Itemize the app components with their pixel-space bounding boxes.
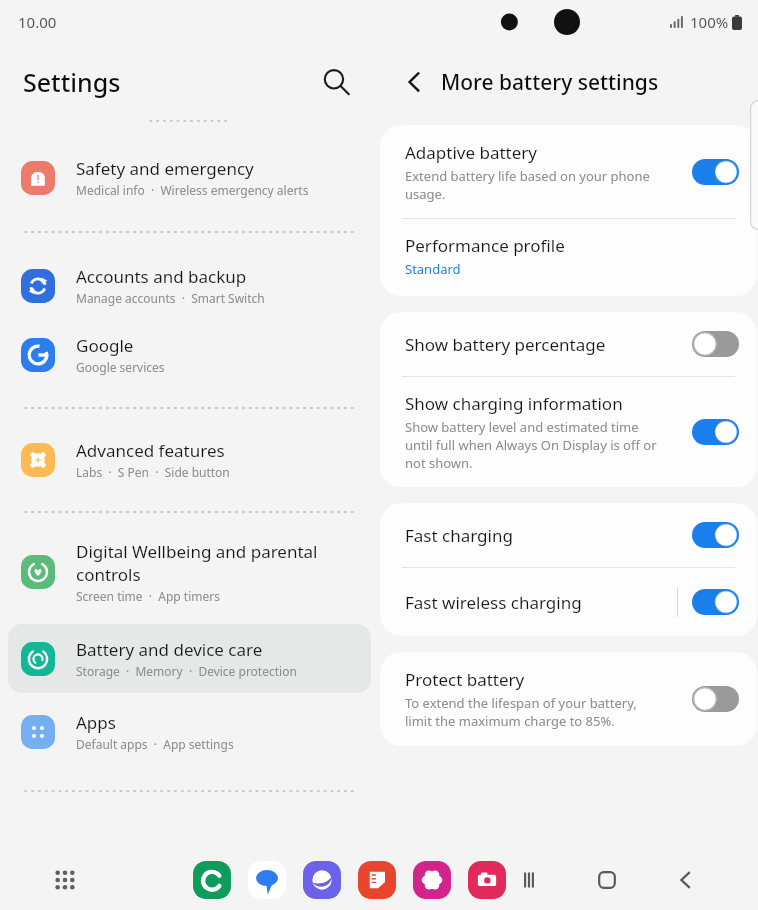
staticText: Digital Wellbeing and parental controls xyxy=(76,540,318,586)
staticText: Accounts and backup xyxy=(76,265,247,288)
button[interactable]: Protect battery xyxy=(380,652,757,746)
button[interactable]: Notes xyxy=(358,861,396,899)
staticText: 10.00 xyxy=(18,12,57,32)
staticText: Settings xyxy=(23,65,121,99)
staticText: Show battery percentage xyxy=(405,333,606,356)
staticText: Battery and device care xyxy=(76,638,263,661)
staticText: Screen time · App timers xyxy=(76,588,220,604)
button[interactable]: Toggle on xyxy=(692,522,739,548)
staticText: Performance profile xyxy=(405,234,565,257)
staticText: Standard xyxy=(405,260,461,278)
button[interactable]: Apps xyxy=(8,697,371,766)
button[interactable]: Gallery xyxy=(413,861,451,899)
button[interactable]: Adaptive battery xyxy=(380,125,757,218)
button[interactable]: Back xyxy=(668,863,702,897)
staticText: More battery settings xyxy=(441,68,659,97)
staticText: Apps xyxy=(76,711,116,734)
staticText: Fast charging xyxy=(405,524,513,547)
button[interactable]: Internet xyxy=(303,861,341,899)
staticText: To extend the lifespan of your battery, … xyxy=(405,694,637,730)
button[interactable]: Safety and emergency xyxy=(8,143,371,212)
button[interactable]: Performance profile xyxy=(380,219,757,296)
staticText: Default apps · App settings xyxy=(76,736,234,752)
button[interactable]: Fast charging xyxy=(380,503,757,567)
button[interactable]: Phone xyxy=(193,861,231,899)
button[interactable]: Camera xyxy=(468,861,506,899)
button[interactable]: Back xyxy=(397,65,431,99)
button[interactable]: Fast wireless charging xyxy=(380,568,757,636)
button[interactable]: Show battery percentage xyxy=(380,312,757,376)
button[interactable]: Digital Wellbeing and parental controls xyxy=(8,526,371,618)
staticText: Medical info · Wireless emergency alerts xyxy=(76,182,309,198)
button[interactable]: Apps list xyxy=(48,863,82,897)
button[interactable]: Advanced features xyxy=(8,425,371,494)
button[interactable]: Accounts and backup xyxy=(8,251,371,320)
staticText: Fast wireless charging xyxy=(405,591,582,614)
button[interactable]: Battery and device care xyxy=(8,624,371,693)
button[interactable]: Toggle on xyxy=(692,159,739,185)
staticText: 100% xyxy=(690,12,729,32)
staticText: Show battery level and estimated time un… xyxy=(405,418,657,472)
staticText: Adaptive battery xyxy=(405,141,538,164)
button[interactable]: Messages xyxy=(248,861,286,899)
staticText: Protect battery xyxy=(405,668,525,691)
button[interactable]: Toggle on xyxy=(692,419,739,445)
button[interactable]: Search xyxy=(319,65,353,99)
staticText: Extend battery life based on your phone … xyxy=(405,167,650,203)
staticText: Advanced features xyxy=(76,439,225,462)
button[interactable]: Google xyxy=(8,320,371,389)
button[interactable]: Toggle on xyxy=(692,589,739,615)
staticText: Google xyxy=(76,334,134,357)
staticText: Show charging information xyxy=(405,392,623,415)
button[interactable]: Toggle off xyxy=(692,686,739,712)
staticText: Safety and emergency xyxy=(76,157,254,180)
staticText: Labs · S Pen · Side button xyxy=(76,464,230,480)
staticText: Storage · Memory · Device protection xyxy=(76,663,297,679)
staticText: Google services xyxy=(76,359,165,375)
staticText: Manage accounts · Smart Switch xyxy=(76,290,265,306)
button[interactable]: Show charging information xyxy=(380,377,757,487)
button[interactable]: Recent apps xyxy=(512,863,546,897)
button[interactable]: Toggle off xyxy=(692,331,739,357)
button[interactable]: Home xyxy=(590,863,624,897)
